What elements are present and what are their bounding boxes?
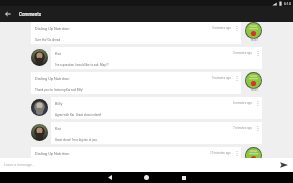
button[interactable]: More options xyxy=(234,149,239,157)
button[interactable]: More options xyxy=(234,74,239,82)
staticText: Thank you for listening Kai and Billy! xyxy=(35,88,84,92)
button[interactable]: Leave a message... xyxy=(4,158,279,172)
button[interactable]: Kai avatar xyxy=(31,124,48,141)
staticText: 3 minutes ago xyxy=(233,51,252,55)
staticText: 6 minutes ago xyxy=(233,101,252,105)
staticText: 10 minutes ago xyxy=(210,151,231,155)
staticText: 3 minutes ago xyxy=(212,26,231,30)
button[interactable]: Back xyxy=(91,172,128,183)
button[interactable]: Back xyxy=(0,6,16,22)
staticText: Great show! I'm a big fan of you. xyxy=(55,138,98,142)
button[interactable]: More options xyxy=(255,124,260,132)
staticText: Comments xyxy=(19,12,42,17)
button[interactable]: Kai xyxy=(51,47,262,69)
staticText: Dialing Up Nutrition xyxy=(35,76,70,81)
staticText: Kai xyxy=(55,126,61,131)
button[interactable]: Host avatar xyxy=(245,147,262,164)
button[interactable]: Dialing Up Nutrition xyxy=(31,147,241,169)
button[interactable]: Kai xyxy=(51,122,262,144)
staticText: I've a question I would like to ask. May… xyxy=(55,63,109,67)
staticText: Leave a message... xyxy=(4,163,35,167)
staticText: Billy xyxy=(55,101,63,106)
button[interactable]: Billy avatar xyxy=(31,99,48,116)
staticText: Kai xyxy=(55,51,61,56)
staticText: Dialing Up Nutrition xyxy=(35,151,70,156)
staticText: Dialing Up Nutrition xyxy=(35,26,70,31)
staticText: 5 minutes ago xyxy=(212,76,231,80)
button[interactable]: Dialing Up Nutrition xyxy=(31,72,241,94)
staticText: Sure thx! Go ahead xyxy=(35,38,61,42)
button[interactable]: Home xyxy=(128,172,165,183)
button[interactable]: More options xyxy=(255,49,260,57)
staticText: 6:14 xyxy=(284,2,291,6)
button[interactable]: More options xyxy=(255,99,260,107)
staticText: HOST xyxy=(251,89,258,92)
button[interactable]: Recents xyxy=(165,172,202,183)
button[interactable]: Host avatar xyxy=(245,22,262,39)
button[interactable]: Send xyxy=(279,160,289,170)
staticText: Agree with Kai. Great show indeed! xyxy=(55,113,102,117)
button[interactable]: Kai avatar xyxy=(31,49,48,66)
button[interactable]: Billy xyxy=(51,97,262,119)
button[interactable]: More options xyxy=(234,24,239,32)
button[interactable]: Dialing Up Nutrition xyxy=(31,22,241,44)
staticText: HOST xyxy=(251,39,258,42)
button[interactable]: Host avatar xyxy=(245,72,262,89)
staticText: 7 minutes ago xyxy=(233,126,252,130)
